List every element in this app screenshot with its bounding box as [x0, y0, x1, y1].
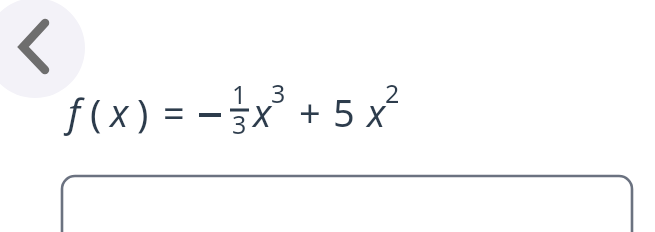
button[interactable]: Back	[0, 0, 85, 98]
